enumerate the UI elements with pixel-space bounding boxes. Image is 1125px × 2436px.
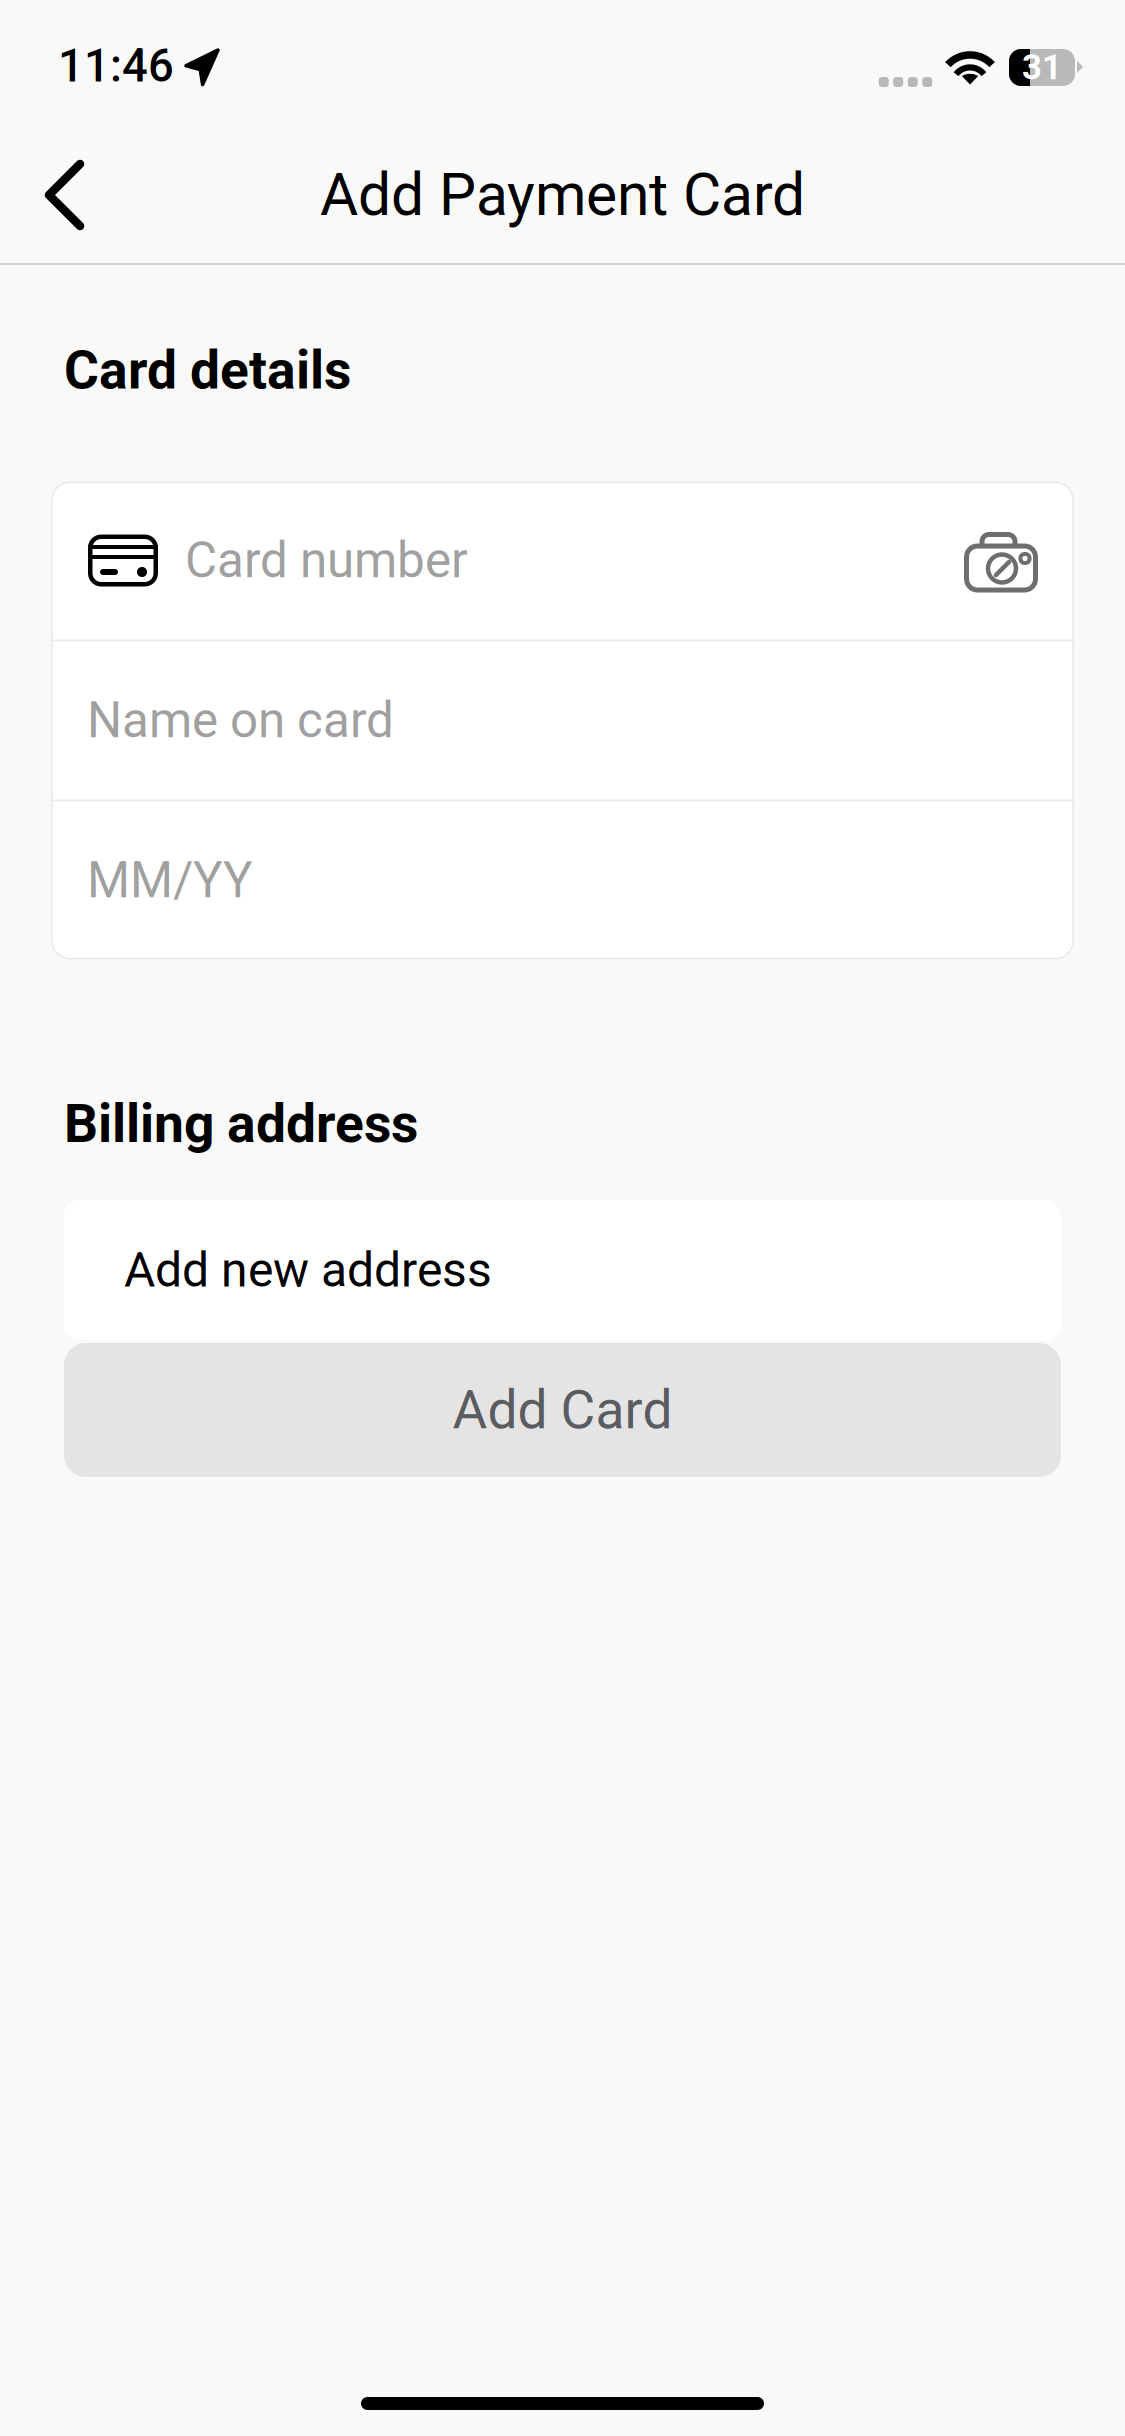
button[interactable]: Add new address bbox=[0, 1200, 1125, 1340]
staticText: Billing address bbox=[64, 1092, 418, 1155]
button[interactable]: Back bbox=[0, 136, 130, 254]
button[interactable]: Add Card bbox=[0, 1343, 1125, 1477]
staticText: MM/YY bbox=[87, 852, 253, 909]
staticText: Add new address bbox=[124, 1242, 492, 1298]
staticText: 11:46 bbox=[58, 39, 174, 92]
staticText: Card details bbox=[64, 339, 351, 401]
staticText: Card number bbox=[185, 532, 468, 589]
staticText: Add Payment Card bbox=[320, 161, 805, 229]
button[interactable]: Scan card bbox=[964, 481, 1074, 639]
staticText: Name on card bbox=[87, 692, 394, 749]
staticText: 31 bbox=[1022, 47, 1062, 88]
staticText: Add Card bbox=[452, 1379, 672, 1441]
